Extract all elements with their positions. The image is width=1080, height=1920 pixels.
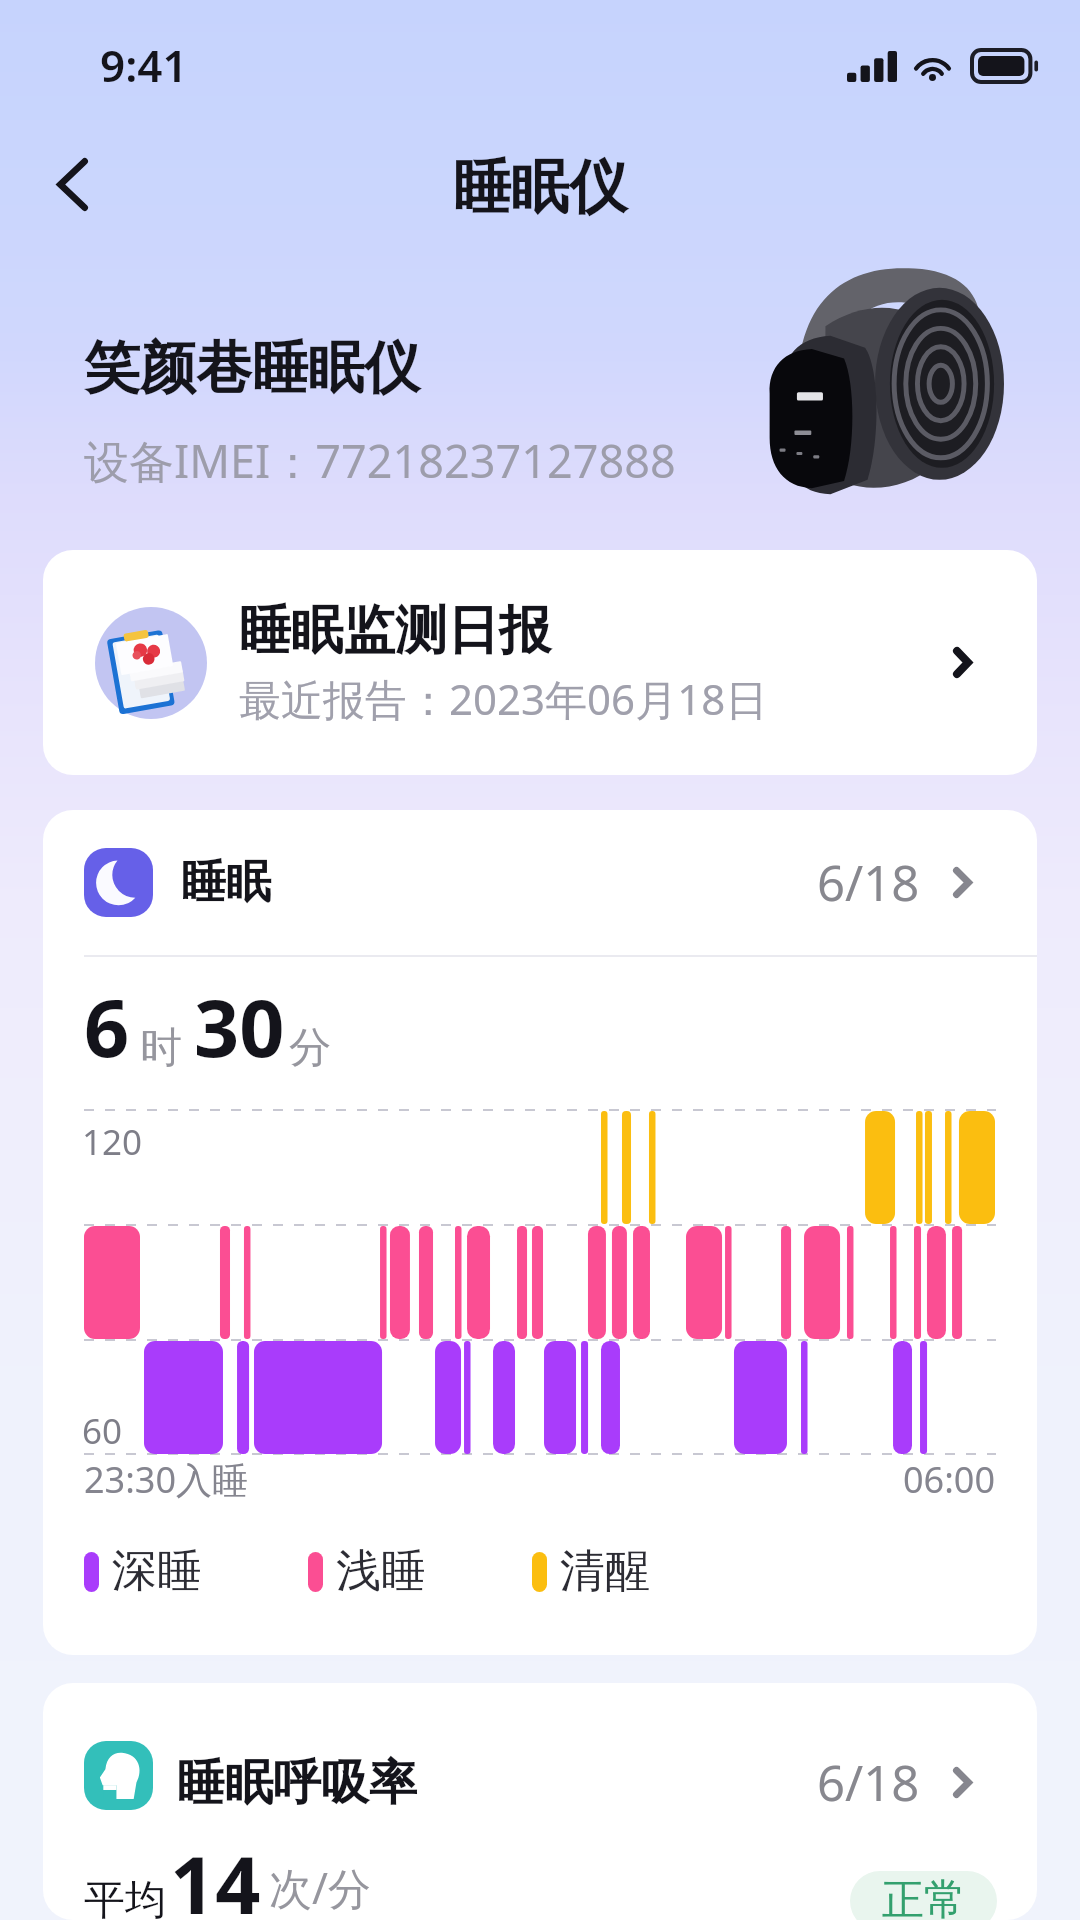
staticText: 14 (170, 1830, 261, 1916)
staticText: 清醒 (560, 1543, 650, 1600)
staticText: 6/18 (817, 849, 920, 916)
staticText: 60 (82, 1407, 123, 1455)
staticText: 笑颜巷睡眠仪 (84, 333, 420, 404)
staticText: 睡眠仪 (453, 151, 627, 224)
staticText: 分 (289, 1022, 331, 1075)
staticText: 睡眠呼吸率 (177, 1753, 417, 1813)
button[interactable]: 正常 (850, 1871, 997, 1920)
staticText: 最近报告：2023年06月18日 (239, 670, 768, 727)
staticText: 30 (194, 973, 285, 1081)
button[interactable]: Back (22, 134, 122, 234)
button[interactable]: 睡眠监测日报 (43, 550, 1037, 775)
staticText: 深睡 (112, 1543, 202, 1600)
staticText: 睡眠 (181, 854, 271, 911)
staticText: 睡眠监测日报 (239, 598, 551, 664)
staticText: 06:00 (903, 1455, 996, 1504)
button[interactable]: 睡眠呼吸率 (43, 1710, 1037, 1855)
staticText: 设备IMEI：77218237127888 (84, 430, 676, 491)
staticText: 9:41 (100, 35, 188, 95)
staticText: 时 (140, 1022, 182, 1075)
staticText: 次/分 (269, 1858, 371, 1917)
staticText: 6/18 (817, 1749, 920, 1816)
button[interactable]: 睡眠 (43, 810, 1037, 955)
staticText: 23:30入睡 (84, 1455, 249, 1504)
staticText: 正常 (882, 1874, 966, 1920)
staticText: 浅睡 (336, 1543, 426, 1600)
staticText: 120 (82, 1118, 143, 1166)
staticText: 平均 (84, 1875, 166, 1920)
staticText: 6 (84, 973, 130, 1081)
